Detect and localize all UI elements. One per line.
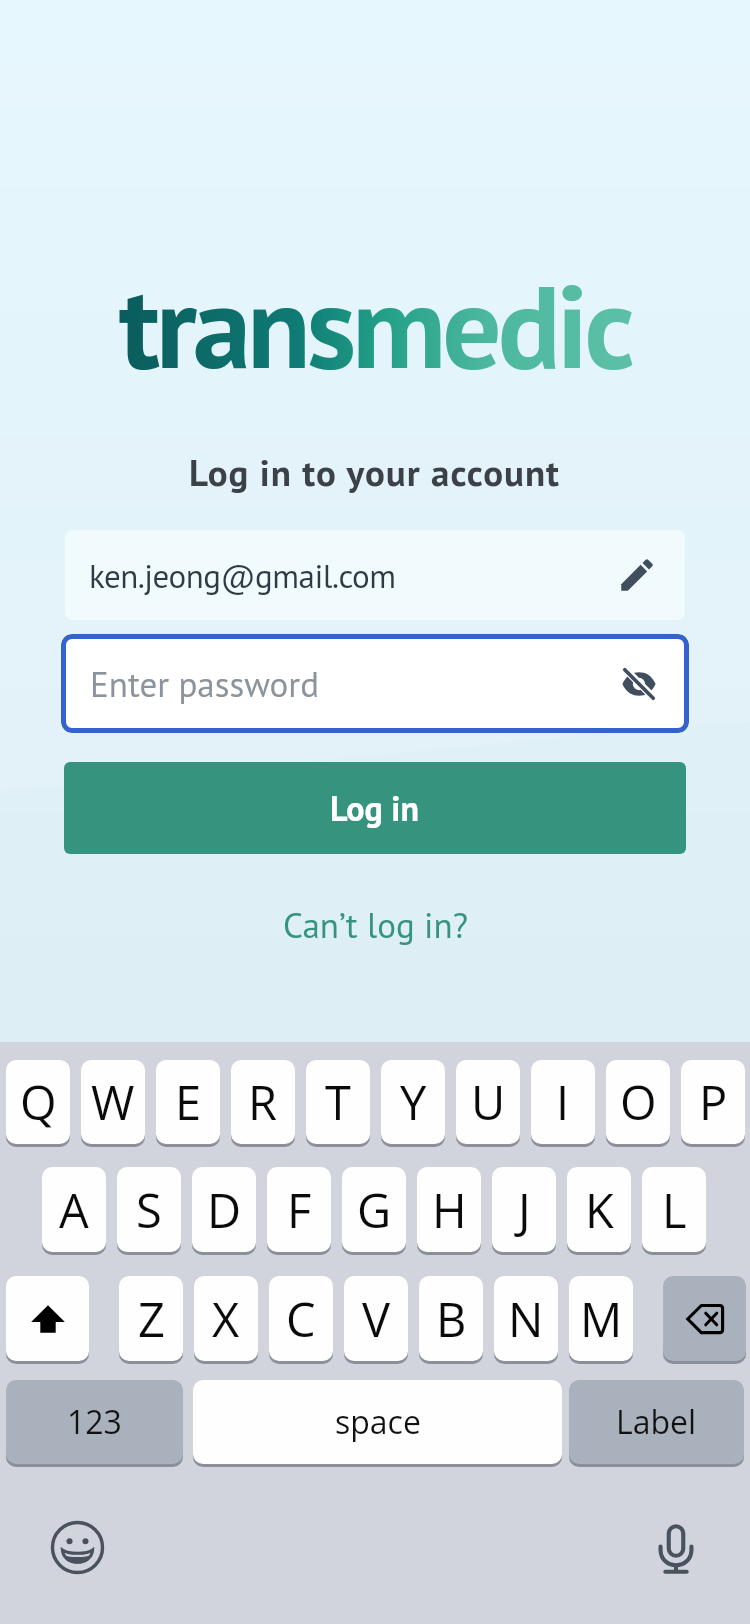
button[interactable]: R [231, 1060, 295, 1144]
staticText: R [248, 1070, 278, 1134]
button[interactable]: E [156, 1060, 220, 1144]
staticText: U [471, 1070, 506, 1134]
staticText: I [556, 1070, 570, 1134]
button[interactable]: J [492, 1167, 556, 1252]
button[interactable]: Shift [6, 1276, 89, 1361]
button[interactable]: N [494, 1276, 558, 1361]
staticText: T [325, 1070, 351, 1134]
button[interactable]: X [194, 1276, 258, 1361]
staticText: Z [138, 1287, 165, 1351]
staticText: Q [20, 1070, 57, 1134]
button[interactable]: ken.jeong@gmail.com [65, 530, 685, 620]
button[interactable]: A [42, 1167, 106, 1252]
staticText: S [136, 1178, 162, 1242]
staticText: V [362, 1287, 391, 1351]
staticText: H [432, 1178, 467, 1242]
button[interactable]: Show password [620, 665, 658, 703]
staticText: B [436, 1287, 467, 1351]
button[interactable]: V [344, 1276, 408, 1361]
staticText: Enter password [90, 661, 320, 706]
staticText: D [207, 1178, 242, 1242]
button[interactable]: I [531, 1060, 595, 1144]
staticText: Log in to your account [189, 448, 561, 496]
staticText: C [286, 1287, 316, 1351]
button[interactable]: Enter password [61, 634, 689, 733]
button[interactable]: O [606, 1060, 670, 1144]
button[interactable]: P [681, 1060, 745, 1144]
staticText: M [580, 1287, 623, 1351]
button[interactable]: Q [6, 1060, 70, 1144]
staticText: J [518, 1178, 531, 1242]
staticText: ken.jeong@gmail.com [89, 554, 396, 597]
staticText: F [287, 1178, 312, 1242]
staticText: K [585, 1178, 614, 1242]
staticText: Log in [330, 786, 420, 830]
button[interactable]: Emoji [50, 1520, 105, 1575]
staticText: W [91, 1070, 135, 1134]
staticText: Label [616, 1400, 697, 1444]
staticText: transmedic [119, 249, 631, 400]
button[interactable]: Edit email [616, 554, 658, 596]
button[interactable]: U [456, 1060, 520, 1144]
button[interactable]: K [567, 1167, 631, 1252]
staticText: A [59, 1178, 89, 1242]
staticText: E [175, 1070, 202, 1134]
staticText: Y [400, 1070, 427, 1134]
button[interactable]: F [267, 1167, 331, 1252]
button[interactable]: C [269, 1276, 333, 1361]
button[interactable]: space [193, 1380, 562, 1464]
staticText: P [699, 1070, 728, 1134]
button[interactable]: Log in [64, 762, 686, 854]
staticText: G [357, 1178, 392, 1242]
button[interactable]: S [117, 1167, 181, 1252]
staticText: 123 [67, 1400, 122, 1444]
button[interactable]: L [642, 1167, 706, 1252]
button[interactable]: T [306, 1060, 370, 1144]
button[interactable]: Can’t log in? [269, 896, 482, 953]
staticText: O [620, 1070, 657, 1134]
staticText: space [335, 1400, 421, 1444]
button[interactable]: W [81, 1060, 145, 1144]
button[interactable]: M [569, 1276, 633, 1361]
button[interactable]: 123 [6, 1380, 183, 1464]
button[interactable]: Y [381, 1060, 445, 1144]
button[interactable]: H [417, 1167, 481, 1252]
button[interactable]: B [419, 1276, 483, 1361]
button[interactable]: G [342, 1167, 406, 1252]
button[interactable]: Backspace [663, 1276, 746, 1361]
button[interactable]: Voice input [647, 1520, 705, 1578]
button[interactable]: Label [569, 1380, 744, 1464]
staticText: L [662, 1178, 687, 1242]
staticText: N [508, 1287, 544, 1351]
button[interactable]: Z [119, 1276, 183, 1361]
button[interactable]: D [192, 1167, 256, 1252]
staticText: X [212, 1287, 240, 1351]
